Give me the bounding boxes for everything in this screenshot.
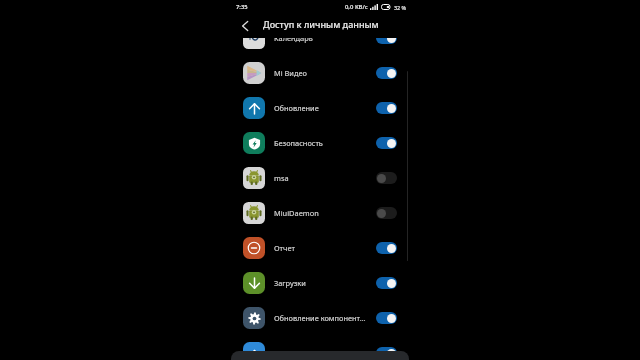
button[interactable]: Disabled [376,171,397,185]
button[interactable]: Enabled [376,101,397,115]
button[interactable]: Mi Видео [231,55,409,90]
button[interactable]: Enabled [376,66,397,80]
staticText: Обновление компонент… [274,313,376,323]
staticText: Погода [274,348,376,358]
staticText: 7:35 [236,3,248,11]
staticText: 32 % [394,4,407,11]
staticText: msa [274,173,376,183]
button[interactable]: Отчет [231,230,409,265]
button[interactable]: Enabled [376,276,397,290]
staticText: MiuiDaemon [274,208,376,218]
button[interactable]: Disabled [376,206,397,220]
button[interactable]: Enabled [376,311,397,325]
staticText: Отчет [274,243,376,253]
button[interactable]: Enabled [376,38,397,45]
button[interactable]: Загрузки [231,265,409,300]
button[interactable]: Погода [231,335,409,360]
staticText: Безопасность [274,138,376,148]
staticText: 0,0 KB/c [345,3,368,11]
staticText: Загрузки [274,278,376,288]
button[interactable]: Enabled [376,136,397,150]
button[interactable]: Back [236,17,254,35]
button[interactable]: Обновление компонент… [231,300,409,335]
staticText: Календарь [274,38,376,43]
button[interactable]: Enabled [376,346,397,360]
staticText: Mi Видео [274,68,376,78]
button[interactable]: Безопасность [231,125,409,160]
button[interactable]: Enabled [376,241,397,255]
button[interactable]: Обновление [231,90,409,125]
staticText: Доступ к личным данным [263,18,379,30]
button[interactable]: Календарь [231,38,409,55]
button[interactable]: MiuiDaemon [231,195,409,230]
button[interactable]: msa [231,160,409,195]
staticText: Обновление [274,103,376,113]
